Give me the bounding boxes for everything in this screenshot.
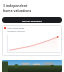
- staticText: Updated monthly: [7, 30, 25, 33]
- staticText: 3 independent: [3, 3, 28, 8]
- button[interactable]: Your home value: [2, 25, 62, 56]
- button[interactable]: Get my valuations: [2, 17, 62, 23]
- staticText: Get my valuations: [22, 19, 43, 22]
- staticText: Your home value: [7, 27, 25, 30]
- staticText: home valuations: [3, 8, 32, 13]
- button[interactable]: Property photo: [2, 60, 62, 72]
